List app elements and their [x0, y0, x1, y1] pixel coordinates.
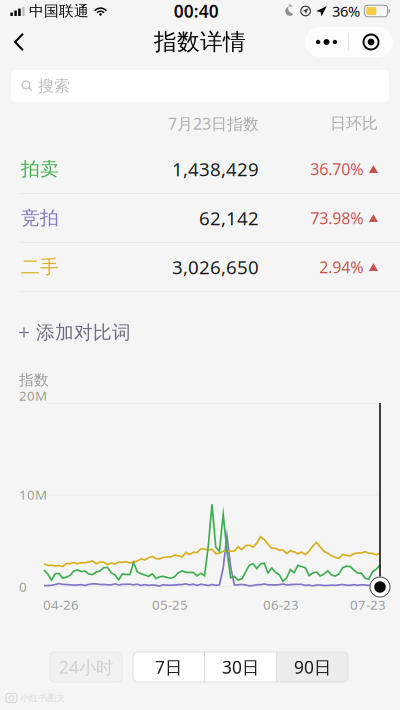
staticText: 中国联通	[29, 2, 89, 20]
staticText: 00:40	[174, 0, 219, 22]
staticText: 拍卖	[21, 158, 59, 180]
staticText: 添加对比词	[36, 321, 131, 344]
button[interactable]: More	[305, 27, 348, 57]
staticText: 2.94%	[319, 256, 363, 278]
staticText: 0	[19, 578, 27, 595]
staticText: 30日	[222, 655, 259, 678]
button[interactable]: 添加对比词	[0, 292, 400, 373]
staticText: 小红书图文	[20, 692, 65, 704]
button[interactable]: Back	[0, 23, 38, 61]
button[interactable]: 竞拍	[0, 194, 400, 243]
staticText: 62,142	[199, 206, 259, 230]
button[interactable]: 30日	[205, 652, 276, 682]
staticText: 73.98%	[310, 207, 363, 229]
staticText: 指数详情	[154, 28, 246, 56]
staticText: 04-26	[43, 596, 79, 613]
staticText: 36.70%	[310, 158, 363, 180]
staticText: 36%	[332, 1, 360, 21]
staticText: 日环比	[330, 114, 378, 133]
staticText: 3,026,650	[172, 255, 259, 279]
staticText: 07-23	[350, 596, 386, 613]
button[interactable]: 7日	[133, 652, 204, 682]
staticText: 90日	[294, 655, 331, 678]
button[interactable]: 搜索	[11, 70, 389, 102]
staticText: 搜索	[38, 76, 70, 96]
button[interactable]: 24小时	[50, 652, 122, 682]
button[interactable]: 90日	[277, 652, 348, 682]
staticText: 05-25	[152, 596, 188, 613]
staticText: 二手	[21, 256, 59, 278]
staticText: 1,438,429	[172, 157, 259, 181]
button[interactable]: 拍卖	[0, 145, 400, 194]
staticText: 7日	[155, 655, 182, 678]
staticText: 指数	[19, 371, 49, 389]
staticText: 竞拍	[21, 207, 59, 229]
staticText: 06-23	[263, 596, 299, 613]
staticText: 10M	[19, 486, 47, 503]
staticText: 24小时	[59, 655, 113, 678]
button[interactable]: Close	[349, 27, 393, 57]
staticText: 20M	[19, 387, 47, 404]
button[interactable]: 二手	[0, 243, 400, 292]
staticText: 7月23日指数	[168, 113, 259, 134]
